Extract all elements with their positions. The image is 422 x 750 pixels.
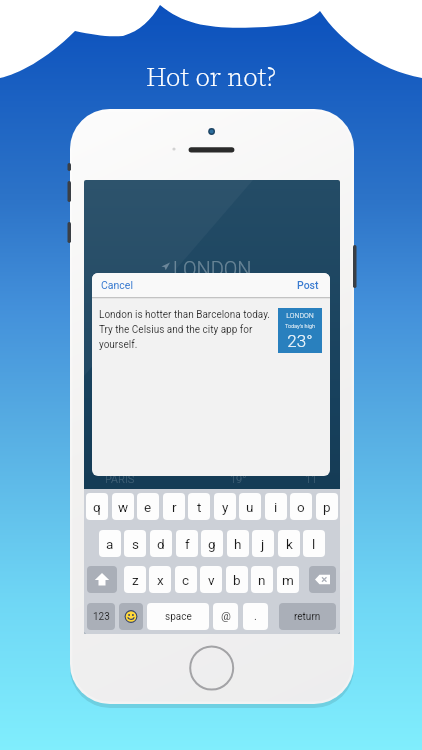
button[interactable]: Shift [87, 566, 117, 593]
button[interactable]: Backspace [309, 566, 336, 593]
staticText: Post [297, 279, 319, 291]
staticText: i [274, 499, 278, 515]
button[interactable]: return [279, 603, 336, 630]
button[interactable]: h [227, 530, 249, 557]
staticText: x [157, 572, 164, 588]
button[interactable]: i [265, 493, 287, 520]
staticText: Hot or not? [0, 59, 422, 750]
staticText: y [222, 499, 229, 515]
staticText: LONDON [173, 257, 252, 280]
staticText: n [258, 572, 266, 588]
staticText: London is hotter than Barcelona today. T… [99, 309, 299, 350]
button[interactable]: y [214, 493, 236, 520]
button[interactable]: Post [288, 275, 326, 295]
staticText: z [132, 572, 139, 588]
staticText: h [234, 536, 242, 552]
button[interactable]: z [124, 566, 146, 593]
button[interactable]: Cancel [96, 275, 146, 295]
staticText: g [208, 536, 216, 552]
button[interactable]: r [163, 493, 185, 520]
staticText: w [118, 499, 129, 515]
staticText: t [197, 499, 202, 515]
staticText: LONDON [278, 312, 322, 357]
staticText: u [246, 499, 254, 515]
button[interactable]: x [149, 566, 171, 593]
button[interactable]: space [147, 603, 209, 630]
staticText: space [165, 611, 192, 623]
staticText: PARIS [105, 473, 135, 486]
staticText: 23° [278, 331, 322, 376]
button[interactable]: k [278, 530, 300, 557]
button[interactable]: q [86, 493, 108, 520]
button[interactable]: a [99, 530, 121, 557]
button[interactable]: Emoji [119, 603, 143, 630]
staticText: c [182, 572, 190, 588]
staticText: d [157, 536, 165, 552]
button[interactable]: o [290, 493, 312, 520]
button[interactable]: Numbers [87, 603, 115, 630]
button[interactable]: e [137, 493, 159, 520]
staticText: j [261, 536, 265, 552]
staticText: 11 [305, 473, 318, 486]
button[interactable]: f [176, 530, 198, 557]
staticText: @ [221, 610, 231, 623]
button[interactable]: d [150, 530, 172, 557]
staticText: e [144, 499, 152, 515]
button[interactable]: t [188, 493, 210, 520]
button[interactable]: . [243, 603, 268, 630]
staticText: 123 [93, 611, 110, 623]
staticText: a [106, 536, 114, 552]
staticText: k [286, 536, 293, 552]
staticText: q [93, 499, 101, 515]
button[interactable]: n [251, 566, 273, 593]
button[interactable]: m [277, 566, 299, 593]
staticText: 19° [230, 473, 247, 486]
staticText: b [233, 572, 241, 588]
staticText: p [323, 499, 331, 515]
staticText: Cancel [101, 279, 133, 291]
staticText: Today's high [278, 323, 322, 368]
button[interactable]: s [124, 530, 146, 557]
button[interactable]: c [175, 566, 197, 593]
button[interactable]: b [226, 566, 248, 593]
staticText: o [297, 499, 305, 515]
button[interactable]: w [112, 493, 134, 520]
staticText: m [282, 572, 294, 588]
staticText: r [172, 499, 177, 515]
staticText: return [294, 611, 321, 623]
button[interactable]: v [200, 566, 222, 593]
button[interactable]: g [201, 530, 223, 557]
button[interactable]: l [303, 530, 325, 557]
staticText: v [208, 572, 215, 588]
staticText: f [185, 536, 190, 552]
button[interactable]: p [316, 493, 338, 520]
button[interactable]: j [252, 530, 274, 557]
staticText: s [132, 536, 139, 552]
button[interactable]: u [239, 493, 261, 520]
staticText: . [254, 610, 257, 623]
button[interactable]: @ [213, 603, 238, 630]
staticText: l [312, 536, 316, 552]
